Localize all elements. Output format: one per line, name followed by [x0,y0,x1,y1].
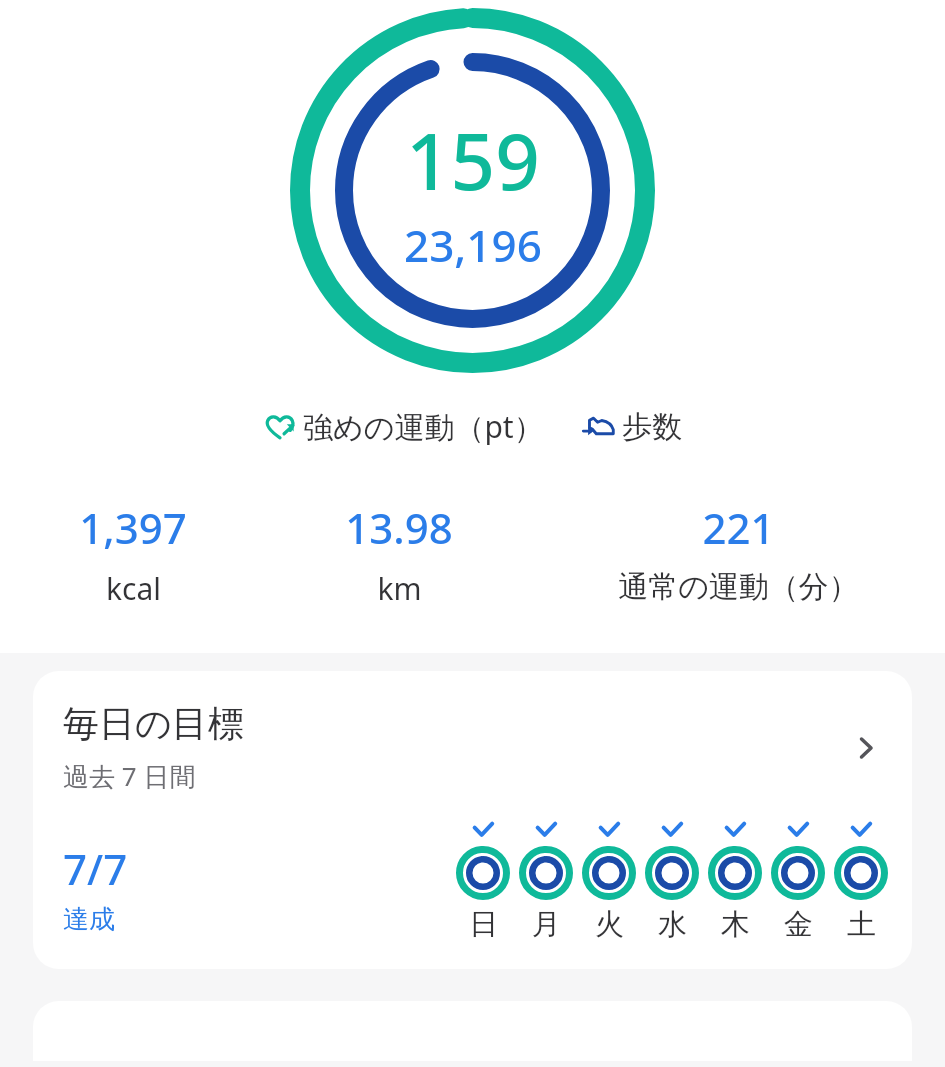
staticText: 火 [595,906,624,943]
staticText: 金 [784,906,813,943]
staticText: 日 [469,906,498,943]
staticText: 月 [532,906,561,943]
button[interactable]: 13.98 [266,499,532,609]
button[interactable]: 1,397 [0,499,266,609]
staticText: 通常の運動（分） [618,568,859,606]
staticText: 水 [658,906,687,943]
staticText: 221 [702,499,775,556]
staticText: 13.98 [345,499,453,556]
staticText: 159 [406,107,540,213]
button[interactable]: 221 [532,499,945,606]
staticText: 土 [847,906,876,943]
button[interactable]: 歩数 [576,402,688,452]
staticText: 過去 7 日間 [63,758,196,794]
other: 詳細を開く [844,726,888,770]
staticText: 木 [721,906,750,943]
staticText: 歩数 [622,408,682,446]
staticText: km [377,568,422,609]
staticText: 強めの運動（pt） [303,406,544,447]
staticText: 23,196 [404,215,542,275]
staticText: 1,397 [79,499,187,556]
button[interactable]: 毎日の目標 [33,671,912,969]
staticText: 7/7 [63,840,128,897]
button[interactable]: 強めの運動（pt） [257,400,550,453]
staticText: 毎日の目標 [63,701,244,746]
staticText: kcal [106,568,161,609]
staticText: 達成 [63,903,115,936]
